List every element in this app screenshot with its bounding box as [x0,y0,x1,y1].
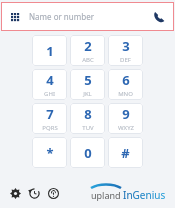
staticText: 3 [122,37,130,55]
button[interactable]: 3 [108,35,143,66]
button[interactable]: 7 [32,103,67,134]
staticText: 0 [84,144,92,162]
staticText: * [46,144,54,162]
button[interactable]: 2 [70,35,105,66]
staticText: ABC [82,56,94,64]
button[interactable]: 4 [32,69,67,100]
staticText: 7 [46,105,54,123]
button[interactable]: Call history [26,185,42,201]
button[interactable]: 0 [70,137,105,168]
button[interactable]: Keypad [7,9,23,25]
button[interactable]: 9 [108,103,143,134]
staticText: 6 [122,71,130,89]
staticText: GHI [44,90,55,98]
staticText: JKL [83,90,92,98]
staticText: 8 [84,105,92,123]
staticText: # [121,144,130,162]
button[interactable]: 5 [70,69,105,100]
button[interactable]: # [108,137,143,168]
staticText: 5 [84,71,92,89]
staticText: 1 [46,42,54,60]
button[interactable]: 8 [70,103,105,134]
staticText: MNO [118,90,133,98]
staticText: Name or number [29,11,94,22]
button[interactable]: Call [150,8,168,26]
button[interactable]: Help [45,185,61,201]
button[interactable]: Settings [7,185,23,201]
button[interactable]: 6 [108,69,143,100]
staticText: 2 [84,37,92,55]
staticText: WXYZ [118,124,134,132]
staticText: 9 [122,105,130,123]
staticText: TUV [82,124,94,132]
button[interactable]: 1 [32,35,67,66]
button[interactable]: * [32,137,67,168]
staticText: 4 [46,71,54,89]
staticText: upland [91,189,121,201]
staticText: PQRS [42,124,58,132]
staticText: InGenius [123,188,166,202]
staticText: DEF [120,56,131,64]
